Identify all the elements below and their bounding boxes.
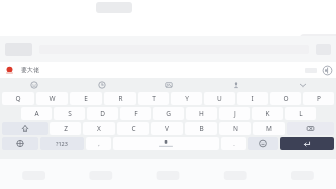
- button[interactable]: L: [285, 107, 316, 120]
- staticText: 要大佬: [21, 66, 39, 74]
- staticText: I: [251, 94, 254, 103]
- button[interactable]: Q: [2, 92, 34, 105]
- button[interactable]: E: [70, 92, 102, 105]
- staticText: B: [199, 124, 204, 133]
- button[interactable]: Recent: [68, 78, 135, 91]
- button[interactable]: J: [219, 107, 250, 120]
- staticText: P: [317, 94, 321, 103]
- staticText: W: [49, 94, 56, 103]
- staticText: X: [97, 124, 101, 133]
- staticText: ,: [98, 140, 100, 147]
- staticText: O: [283, 94, 289, 103]
- button[interactable]: Collapse keyboard: [269, 78, 336, 91]
- button[interactable]: Emoji: [0, 78, 68, 91]
- button[interactable]: Y: [171, 92, 202, 105]
- button[interactable]: Switch language: [2, 137, 38, 150]
- button[interactable]: ,: [86, 137, 111, 150]
- button[interactable]: P: [303, 92, 334, 105]
- staticText: Z: [64, 124, 68, 133]
- button[interactable]: I: [237, 92, 268, 105]
- staticText: C: [131, 124, 136, 133]
- staticText: G: [166, 109, 171, 118]
- button[interactable]: T: [138, 92, 169, 105]
- staticText: E: [84, 94, 88, 103]
- staticText: N: [233, 124, 238, 133]
- button[interactable]: M: [253, 122, 285, 135]
- button[interactable]: V: [151, 122, 183, 135]
- button[interactable]: S: [54, 107, 85, 120]
- button[interactable]: B: [185, 122, 217, 135]
- button[interactable]: D: [87, 107, 118, 120]
- staticText: J: [234, 109, 236, 118]
- staticText: S: [68, 109, 72, 118]
- button[interactable]: A: [21, 107, 52, 120]
- button[interactable]: U: [204, 92, 235, 105]
- staticText: .: [233, 140, 235, 147]
- button[interactable]: F: [120, 107, 151, 120]
- button[interactable]: Backspace: [287, 122, 334, 135]
- staticText: K: [265, 109, 270, 118]
- staticText: R: [118, 94, 123, 103]
- staticText: M: [266, 124, 272, 133]
- staticText: ?123: [56, 140, 68, 147]
- button[interactable]: H: [186, 107, 217, 120]
- staticText: Y: [185, 94, 189, 103]
- button[interactable]: Voice typing: [202, 78, 269, 91]
- staticText: Q: [15, 94, 21, 103]
- button[interactable]: Shift: [2, 122, 48, 135]
- staticText: U: [217, 94, 222, 103]
- button[interactable]: X: [83, 122, 115, 135]
- button[interactable]: R: [104, 92, 136, 105]
- button[interactable]: Space: [113, 137, 219, 150]
- staticText: D: [100, 109, 105, 118]
- button[interactable]: Voice input: [322, 65, 333, 76]
- button[interactable]: Emoji: [248, 137, 278, 150]
- staticText: T: [152, 94, 156, 103]
- staticText: L: [299, 109, 303, 118]
- button[interactable]: C: [117, 122, 149, 135]
- button[interactable]: Enter: [280, 137, 334, 150]
- button[interactable]: O: [270, 92, 301, 105]
- button[interactable]: N: [219, 122, 251, 135]
- button[interactable]: Stickers: [135, 78, 202, 91]
- button[interactable]: Z: [50, 122, 81, 135]
- button[interactable]: K: [252, 107, 283, 120]
- staticText: H: [199, 109, 204, 118]
- staticText: F: [134, 109, 138, 118]
- button[interactable]: W: [36, 92, 68, 105]
- staticText: V: [165, 124, 169, 133]
- button[interactable]: G: [153, 107, 184, 120]
- button[interactable]: Numbers and symbols: [40, 137, 84, 150]
- staticText: A: [34, 109, 39, 118]
